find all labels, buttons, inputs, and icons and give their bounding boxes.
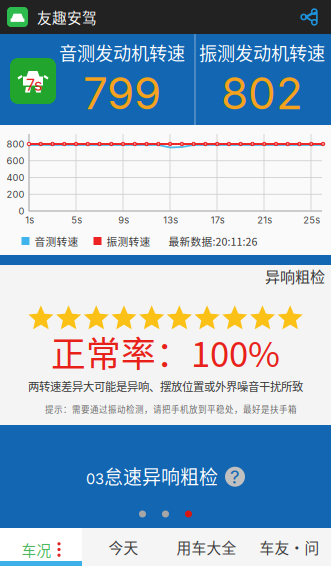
staticText: 振测发动机转速 (199, 39, 325, 66)
staticText: 17s (211, 214, 225, 226)
staticText: 音测转速 (34, 233, 78, 249)
button[interactable]: 车友·问 (248, 528, 331, 566)
staticText: 正常率：100% (51, 327, 280, 377)
staticText: 两转速差异大可能是异响、摆放位置或外界噪音干扰所致 (28, 378, 303, 394)
staticText: 1s (25, 214, 34, 226)
staticText: 21s (257, 214, 272, 226)
staticText: 音测发动机转速 (59, 39, 185, 66)
staticText: 200 (6, 189, 24, 200)
staticText: 友趣安驾 (37, 6, 97, 28)
staticText: 802 (221, 66, 303, 120)
staticText: 9s (118, 214, 129, 226)
staticText: ? (230, 465, 240, 488)
staticText: 提示：需要通过振动检测，请把手机放到平稳处，最好是扶手箱 (45, 403, 297, 415)
staticText: 03 (86, 470, 104, 488)
staticText: 怠速异响粗检 (104, 462, 218, 490)
staticText: 振测转速 (106, 233, 150, 249)
staticText: 25s (303, 214, 320, 226)
staticText: 最新数据:20:11:26 (168, 233, 257, 249)
staticText: 400 (6, 172, 24, 183)
staticText: 0 (18, 205, 24, 217)
staticText: 异响粗检 (265, 265, 325, 287)
staticText: 车况 (21, 539, 51, 560)
button[interactable]: Share (287, 0, 331, 34)
button[interactable]: 用车大全 (165, 528, 248, 566)
button[interactable]: 今天 (82, 528, 165, 566)
staticText: 800 (6, 138, 24, 150)
staticText: 799 (83, 66, 161, 120)
staticText: 5s (71, 214, 82, 226)
staticText: 600 (6, 155, 24, 166)
staticText: 今天 (108, 536, 138, 558)
staticText: 车友·问 (259, 536, 319, 558)
button[interactable]: 车况 (0, 528, 82, 566)
staticText: 13s (163, 214, 178, 226)
staticText: 7s (26, 75, 42, 95)
staticText: 用车大全 (176, 536, 236, 558)
